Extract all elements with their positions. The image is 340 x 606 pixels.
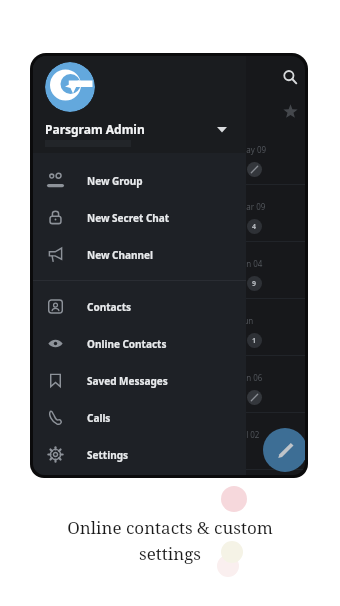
staticText: Settings	[87, 448, 128, 462]
staticText: Parsgram Admin	[45, 121, 145, 137]
staticText: Calls	[87, 411, 111, 425]
button[interactable]: Saved Messages	[33, 362, 246, 399]
button[interactable]: Search	[277, 64, 303, 90]
button[interactable]: Online Contacts	[33, 325, 246, 362]
button[interactable]: Calls	[33, 399, 246, 436]
staticText: Contacts	[87, 300, 132, 314]
button[interactable]: Settings	[33, 436, 246, 473]
button[interactable]: Profile photo	[45, 62, 95, 112]
staticText: Jun 04	[239, 258, 263, 269]
staticText: Online contacts & custom	[67, 516, 273, 539]
staticText: Mar 09	[239, 201, 266, 212]
staticText: Sun	[239, 315, 254, 326]
button[interactable]: Contacts	[33, 288, 246, 325]
button[interactable]: New Channel	[33, 236, 246, 273]
staticText: Online Contacts	[87, 337, 167, 351]
staticText: 4	[252, 222, 257, 232]
staticText: New Group	[87, 174, 143, 188]
staticText: Saved Messages	[87, 374, 168, 388]
button[interactable]: New message	[263, 428, 305, 472]
staticText: settings	[139, 542, 201, 565]
button[interactable]: Switch account	[211, 118, 233, 140]
staticText: 1	[252, 336, 257, 346]
staticText: New Channel	[87, 248, 153, 262]
staticText: 9	[252, 279, 257, 289]
button[interactable]: New Secret Chat	[33, 199, 246, 236]
staticText: Jul 02	[239, 429, 260, 440]
button[interactable]: Favorites	[277, 98, 303, 124]
staticText: Jun 06	[239, 372, 263, 383]
button[interactable]: New Group	[33, 162, 246, 199]
staticText: May 09	[239, 144, 267, 155]
staticText: New Secret Chat	[87, 211, 170, 225]
